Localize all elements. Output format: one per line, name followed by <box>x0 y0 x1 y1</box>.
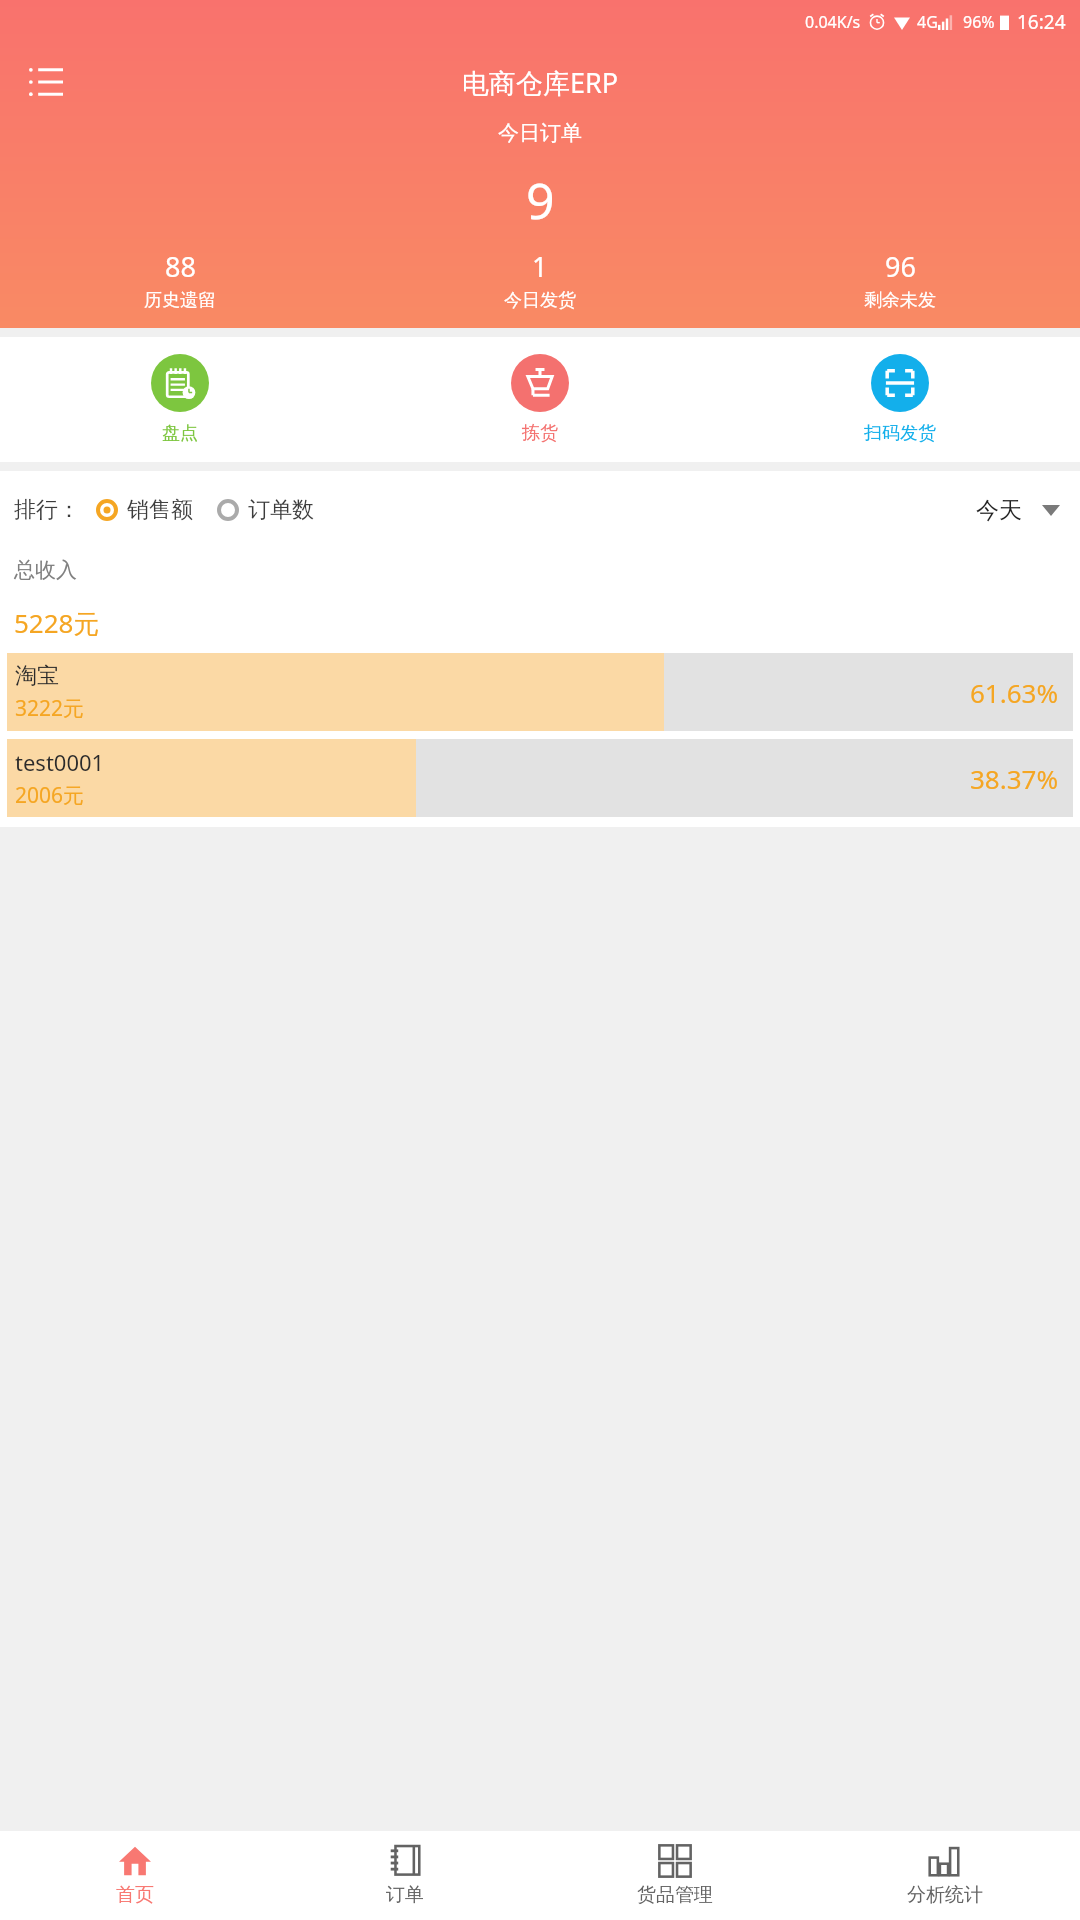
staticText: 电商仓库ERP <box>462 64 619 101</box>
button[interactable]: 货品管理 <box>540 1831 810 1920</box>
staticText: 订单 <box>386 1883 424 1907</box>
button[interactable]: 盘点 <box>0 354 360 445</box>
button[interactable]: 96 <box>720 248 1080 312</box>
staticText: 货品管理 <box>637 1883 713 1907</box>
button[interactable]: 扫码发货 <box>720 354 1080 445</box>
staticText: 5228元 <box>14 605 100 641</box>
staticText: 订单数 <box>248 496 314 524</box>
button[interactable]: 今天 <box>970 490 1066 531</box>
staticText: 剩余未发 <box>864 289 936 312</box>
staticText: 盘点 <box>162 422 198 445</box>
staticText: 88 <box>165 248 196 285</box>
button[interactable]: 88 <box>0 248 360 312</box>
staticText: 1 <box>532 248 548 285</box>
staticText: 今天 <box>976 496 1022 525</box>
staticText: test0001 <box>15 747 105 777</box>
button[interactable]: 分析统计 <box>810 1831 1080 1920</box>
staticText: 96 <box>885 248 916 285</box>
staticText: 历史遗留 <box>144 289 216 312</box>
staticText: 扫码发货 <box>864 422 936 445</box>
button[interactable]: 淘宝 <box>7 653 1073 731</box>
button[interactable]: 1 <box>360 248 720 312</box>
staticText: 销售额 <box>127 496 193 524</box>
staticText: 首页 <box>116 1883 154 1907</box>
staticText: 今日订单 <box>498 120 582 146</box>
staticText: 96% <box>963 11 995 33</box>
button[interactable]: 订单 <box>270 1831 540 1920</box>
staticText: 61.63% <box>970 675 1059 710</box>
staticText: 淘宝 <box>15 662 59 690</box>
staticText: 今日发货 <box>504 289 576 312</box>
staticText: 3222元 <box>15 694 85 723</box>
staticText: 38.37% <box>970 761 1059 796</box>
button[interactable]: Menu <box>20 56 72 108</box>
staticText: 总收入 <box>14 557 77 583</box>
staticText: 排行： <box>14 496 80 524</box>
staticText: 0.04K/s <box>805 11 861 33</box>
staticText: 分析统计 <box>907 1883 983 1907</box>
button[interactable]: test0001 <box>7 739 1073 817</box>
button[interactable]: 订单数 <box>217 492 314 528</box>
staticText: 4G <box>917 11 938 33</box>
button[interactable]: 拣货 <box>360 354 720 445</box>
staticText: 2006元 <box>15 781 85 810</box>
button[interactable]: 销售额 <box>96 492 193 528</box>
button[interactable]: 首页 <box>0 1831 270 1920</box>
staticText: 16:24 <box>1017 9 1066 35</box>
staticText: 9 <box>526 166 555 234</box>
staticText: 拣货 <box>522 422 558 445</box>
